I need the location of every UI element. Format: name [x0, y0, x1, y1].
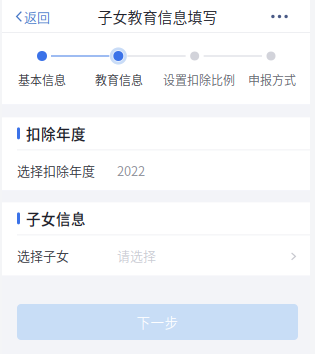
- staticText: 选择子女: [17, 246, 69, 265]
- button[interactable]: More options: [263, 2, 315, 30]
- button[interactable]: 选择子女: [0, 235, 315, 275]
- staticText: 基本信息: [18, 71, 66, 88]
- staticText: 教育信息: [95, 71, 143, 88]
- staticText: 返回: [24, 7, 50, 26]
- staticText: 子女教育信息填写: [97, 6, 217, 27]
- staticText: 子女信息: [26, 208, 86, 229]
- staticText: 设置扣除比例: [163, 71, 235, 88]
- staticText: 2022: [117, 161, 145, 180]
- staticText: 下一步: [136, 312, 178, 332]
- staticText: 请选择: [117, 246, 156, 265]
- staticText: 申报方式: [248, 71, 296, 88]
- staticText: 选择扣除年度: [17, 161, 95, 180]
- button[interactable]: 下一步: [17, 304, 298, 340]
- staticText: 扣除年度: [26, 123, 86, 144]
- button[interactable]: 选择扣除年度: [0, 150, 315, 190]
- button[interactable]: 返回: [0, 1, 58, 32]
